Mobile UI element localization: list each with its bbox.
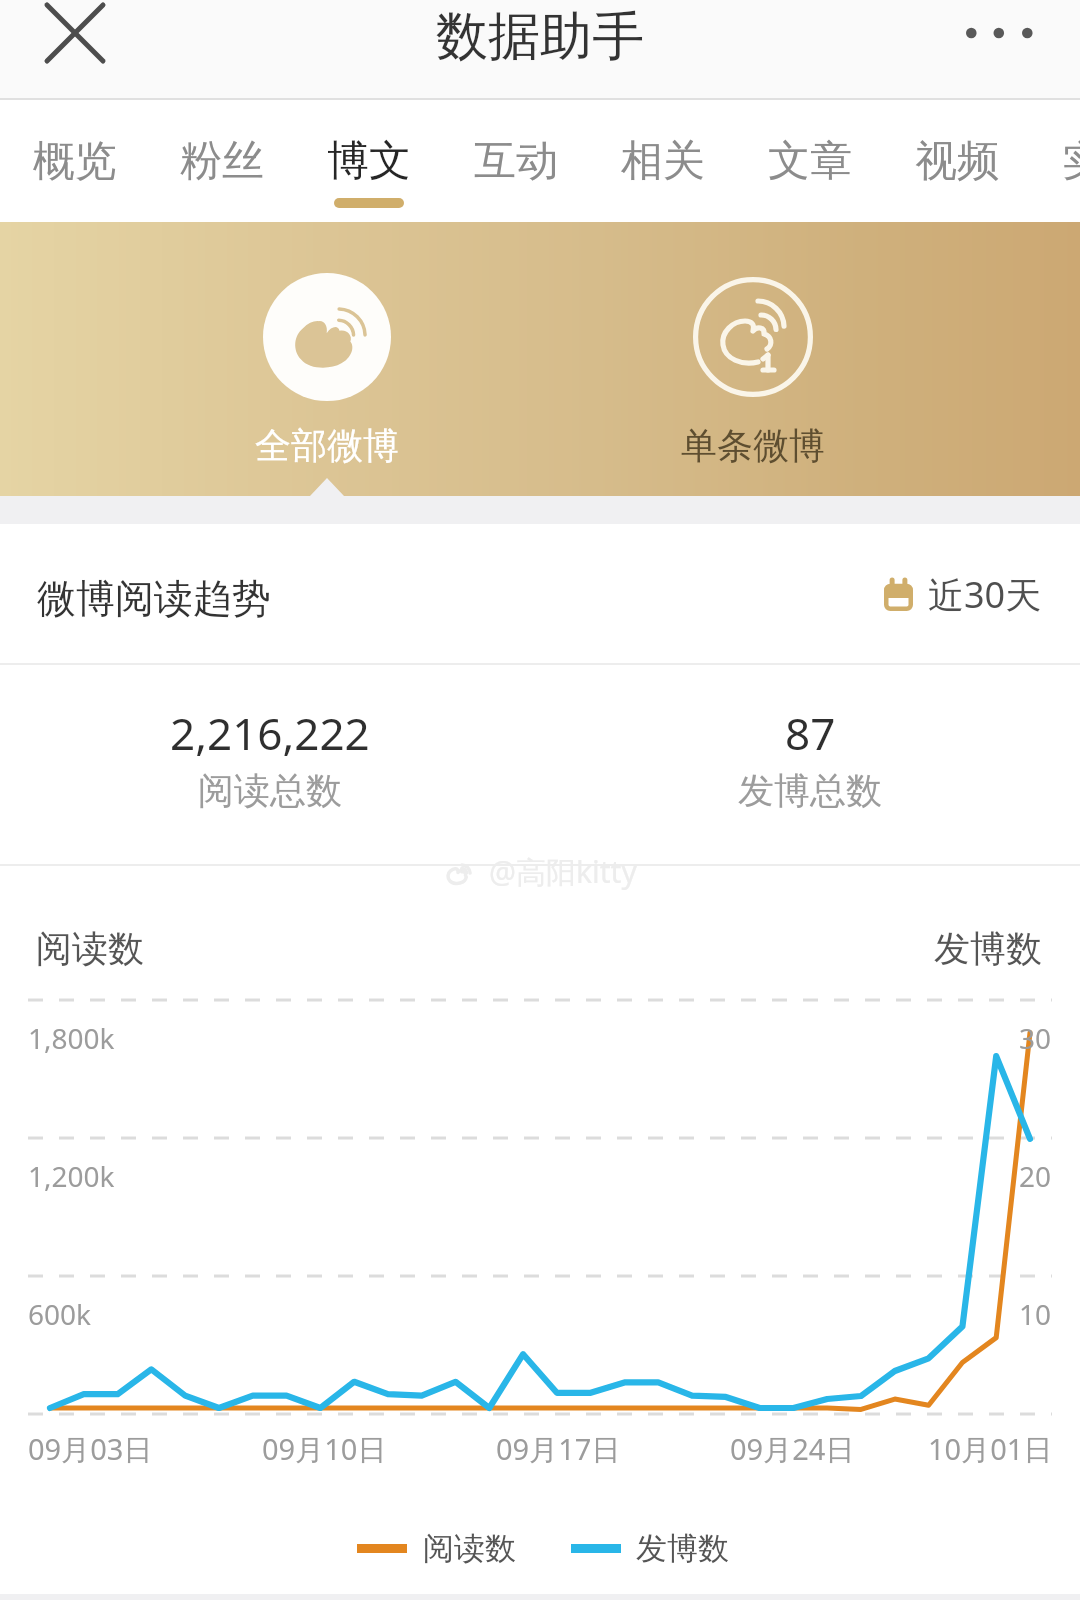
staticText: 概览 — [33, 135, 117, 188]
staticText: 互动 — [474, 135, 558, 188]
button[interactable]: 近30天 — [884, 570, 1042, 619]
staticText: 09月17日 — [496, 1429, 621, 1469]
staticText: 10 — [1019, 1295, 1052, 1333]
staticText: 30 — [1019, 1019, 1052, 1057]
staticText: 10月01日 — [928, 1429, 1053, 1469]
staticText: 微博阅读趋势 — [37, 574, 271, 623]
button[interactable]: 全部微博 — [57, 222, 597, 496]
staticText: 数据助手 — [436, 4, 644, 70]
staticText: 全部微博 — [255, 423, 399, 468]
staticText: 实时 — [1062, 135, 1080, 188]
staticText: 09月10日 — [262, 1429, 387, 1469]
staticText: 1,800k — [28, 1019, 115, 1057]
button[interactable]: 单条微博 — [483, 222, 1023, 496]
staticText: @高阳kitty — [489, 851, 637, 892]
staticText: 20 — [1019, 1157, 1052, 1195]
button[interactable]: 概览 — [33, 100, 117, 222]
staticText: 1,200k — [28, 1157, 115, 1195]
staticText: 阅读总数 — [198, 768, 342, 813]
staticText: 2,216,222 — [170, 703, 370, 763]
staticText: 博文 — [327, 135, 411, 188]
button[interactable]: 文章 — [768, 100, 852, 222]
staticText: 近30天 — [928, 570, 1042, 619]
staticText: 文章 — [768, 135, 852, 188]
staticText: 09月03日 — [28, 1429, 153, 1469]
button[interactable]: 相关 — [621, 100, 705, 222]
staticText: 87 — [785, 703, 836, 763]
button[interactable]: 粉丝 — [180, 100, 264, 222]
staticText: 阅读数 — [423, 1529, 516, 1568]
staticText: 相关 — [621, 135, 705, 188]
staticText: 发博数 — [934, 926, 1042, 971]
button[interactable]: Close — [20, 0, 130, 100]
staticText: 单条微博 — [681, 423, 825, 468]
staticText: 600k — [28, 1295, 92, 1333]
button[interactable]: 实时 — [1062, 100, 1080, 222]
staticText: 粉丝 — [180, 135, 264, 188]
button[interactable]: More options — [928, 0, 1058, 100]
staticText: 发博总数 — [738, 768, 882, 813]
button[interactable]: 博文 — [327, 100, 411, 222]
staticText: 发博数 — [636, 1529, 729, 1568]
button[interactable]: 互动 — [474, 100, 558, 222]
staticText: 阅读数 — [36, 926, 144, 971]
button[interactable]: 视频 — [915, 100, 999, 222]
staticText: 09月24日 — [730, 1429, 855, 1469]
staticText: 视频 — [915, 135, 999, 188]
